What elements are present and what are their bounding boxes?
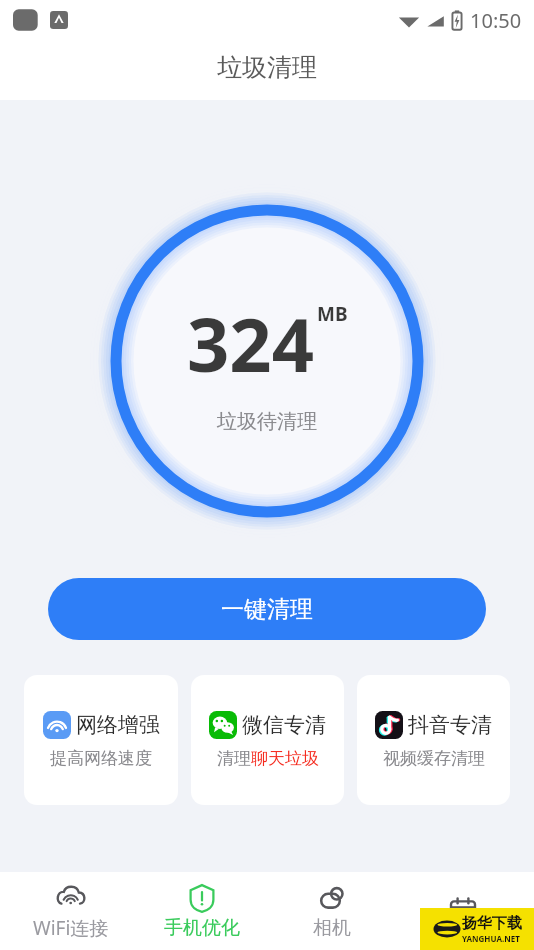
staticText: 提高网络速度 [50,748,152,769]
staticText: MB [317,301,348,327]
staticText: 扬华下载 [462,914,522,933]
button[interactable]: WiFi连接 [11,872,131,950]
button[interactable]: 网络增强 [24,675,178,805]
staticText: WiFi连接 [33,915,109,941]
staticText: YANGHUA.NET [462,933,520,944]
button[interactable]: 微信专清 [191,675,344,805]
staticText: 清理聊天垃圾 [217,748,319,769]
staticText: 10:50 [470,7,522,34]
button[interactable]: 相机 [272,872,392,950]
staticText: 视频缓存清理 [383,748,485,769]
staticText: 垃圾待清理 [217,409,317,434]
staticText: 相机 [313,916,351,940]
staticText: 微信专清 [242,712,326,738]
button[interactable]: 手机优化 [142,872,262,950]
staticText: 手机优化 [164,916,240,940]
staticText: 抖音专清 [408,712,492,738]
button[interactable]: 一键清理 [48,578,486,640]
staticText: 324 [187,293,314,394]
button[interactable]: 抖音专清 [357,675,510,805]
staticText: 网络增强 [76,712,160,738]
staticText: 垃圾清理 [217,52,317,83]
button[interactable]: 日历 [403,872,523,950]
staticText: 一键清理 [221,595,313,624]
